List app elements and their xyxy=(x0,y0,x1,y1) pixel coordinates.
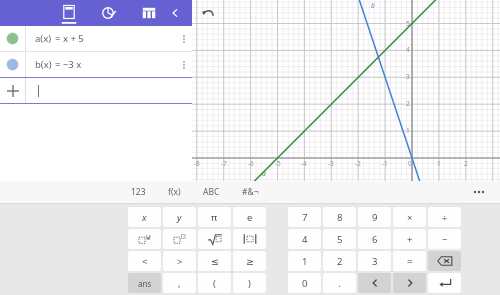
staticText: -6 xyxy=(248,159,254,168)
staticText: 1 xyxy=(406,126,410,135)
button[interactable]: 9 xyxy=(358,207,391,227)
button[interactable]: 4 xyxy=(288,229,321,249)
button[interactable]: ABC xyxy=(200,184,223,200)
staticText: = xyxy=(407,255,413,268)
staticText: f(x) xyxy=(168,186,181,198)
staticText: -7 xyxy=(221,159,227,168)
staticText: 3 xyxy=(372,255,378,268)
staticText: 4 xyxy=(406,45,410,54)
staticText: 6 xyxy=(372,233,378,246)
button[interactable]: − xyxy=(428,229,461,249)
staticText: 1 xyxy=(437,159,441,168)
button[interactable]: , xyxy=(163,273,196,293)
button[interactable]: 6 xyxy=(358,229,391,249)
button[interactable]: 8 xyxy=(323,207,356,227)
button[interactable]: 2 xyxy=(323,251,356,271)
staticText: < xyxy=(142,255,148,268)
staticText: 1 xyxy=(302,255,308,268)
staticText: 5 xyxy=(337,233,343,246)
staticText: 0 xyxy=(302,277,308,290)
button[interactable]: ans xyxy=(128,273,161,293)
button[interactable]: Undo xyxy=(198,3,218,23)
staticText: -4 xyxy=(301,159,307,168)
button[interactable]: y xyxy=(163,207,196,227)
button[interactable]: f(x) xyxy=(165,184,184,200)
staticText: ≤ xyxy=(211,256,219,267)
button[interactable]: Row menu xyxy=(176,26,192,51)
button[interactable]: 0 xyxy=(288,273,321,293)
button[interactable]: b(x) xyxy=(0,52,192,77)
button[interactable]: 1 xyxy=(288,251,321,271)
button[interactable] xyxy=(163,229,196,249)
staticText: -5 xyxy=(275,159,281,168)
staticText: ≥ xyxy=(246,256,254,267)
staticText: + xyxy=(407,233,413,246)
staticText: × xyxy=(407,211,413,224)
button[interactable]: 7 xyxy=(288,207,321,227)
button[interactable]: ( xyxy=(198,273,231,293)
button[interactable]: › xyxy=(393,273,426,293)
staticText: b xyxy=(371,1,375,10)
staticText: 5 xyxy=(406,19,410,28)
staticText: π xyxy=(211,211,218,224)
staticText: -2 xyxy=(355,159,361,168)
staticText: -1 xyxy=(382,159,388,168)
button[interactable]: π xyxy=(198,207,231,227)
staticText: a(x) xyxy=(35,32,52,45)
button[interactable]: ≥ xyxy=(233,251,266,271)
staticText: e xyxy=(247,211,253,224)
button[interactable]: Row menu xyxy=(176,52,192,77)
button[interactable]: > xyxy=(163,251,196,271)
staticText: 3 xyxy=(406,72,410,81)
button[interactable]: . xyxy=(323,273,356,293)
button[interactable]: × xyxy=(393,207,426,227)
button[interactable]: Calculator xyxy=(56,0,82,26)
button[interactable]: #&¬ xyxy=(239,184,262,200)
staticText: ÷ xyxy=(442,211,448,224)
button[interactable]: a(x) xyxy=(0,26,192,51)
button[interactable]: ≤ xyxy=(198,251,231,271)
staticText: 8 xyxy=(337,211,343,224)
staticText: b(x) xyxy=(35,58,52,71)
staticText: . xyxy=(338,277,341,290)
button[interactable]: del xyxy=(428,251,461,271)
staticText: 0 xyxy=(408,159,412,168)
staticText: 2 xyxy=(406,99,410,108)
button[interactable]: Table xyxy=(136,0,162,26)
button[interactable]: ‹ xyxy=(358,273,391,293)
staticText: y xyxy=(177,211,182,224)
button[interactable]: e xyxy=(233,207,266,227)
staticText: 2 xyxy=(464,159,468,168)
button[interactable]: 3 xyxy=(358,251,391,271)
staticText: , xyxy=(178,277,181,290)
button[interactable]: ÷ xyxy=(428,207,461,227)
staticText: > xyxy=(177,255,183,268)
button[interactable]: 123 xyxy=(128,184,149,200)
staticText: ) xyxy=(248,277,251,290)
button[interactable]: Collapse panel xyxy=(162,0,188,26)
button[interactable] xyxy=(0,78,192,103)
button[interactable] xyxy=(128,229,161,249)
button[interactable]: ) xyxy=(233,273,266,293)
button[interactable]: + xyxy=(393,229,426,249)
staticText: 9 xyxy=(372,211,378,224)
button[interactable]: x xyxy=(128,207,161,227)
staticText: = x + 5 xyxy=(55,32,84,45)
button[interactable]: < xyxy=(128,251,161,271)
button[interactable]: 5 xyxy=(323,229,356,249)
staticText: ( xyxy=(213,277,216,290)
button[interactable]: = xyxy=(393,251,426,271)
staticText: a xyxy=(262,169,266,178)
staticText: -8 xyxy=(194,159,200,168)
button[interactable] xyxy=(233,229,266,249)
staticText: 2 xyxy=(337,255,343,268)
staticText: − xyxy=(442,233,448,246)
button[interactable]: ent xyxy=(428,273,461,293)
button[interactable] xyxy=(198,229,231,249)
button[interactable]: Probability xyxy=(96,0,122,26)
staticText: -3 xyxy=(328,159,334,168)
button[interactable]: More options xyxy=(468,181,490,203)
staticText: 7 xyxy=(302,211,308,224)
staticText: 4 xyxy=(302,233,308,246)
staticText: ans xyxy=(138,278,152,289)
